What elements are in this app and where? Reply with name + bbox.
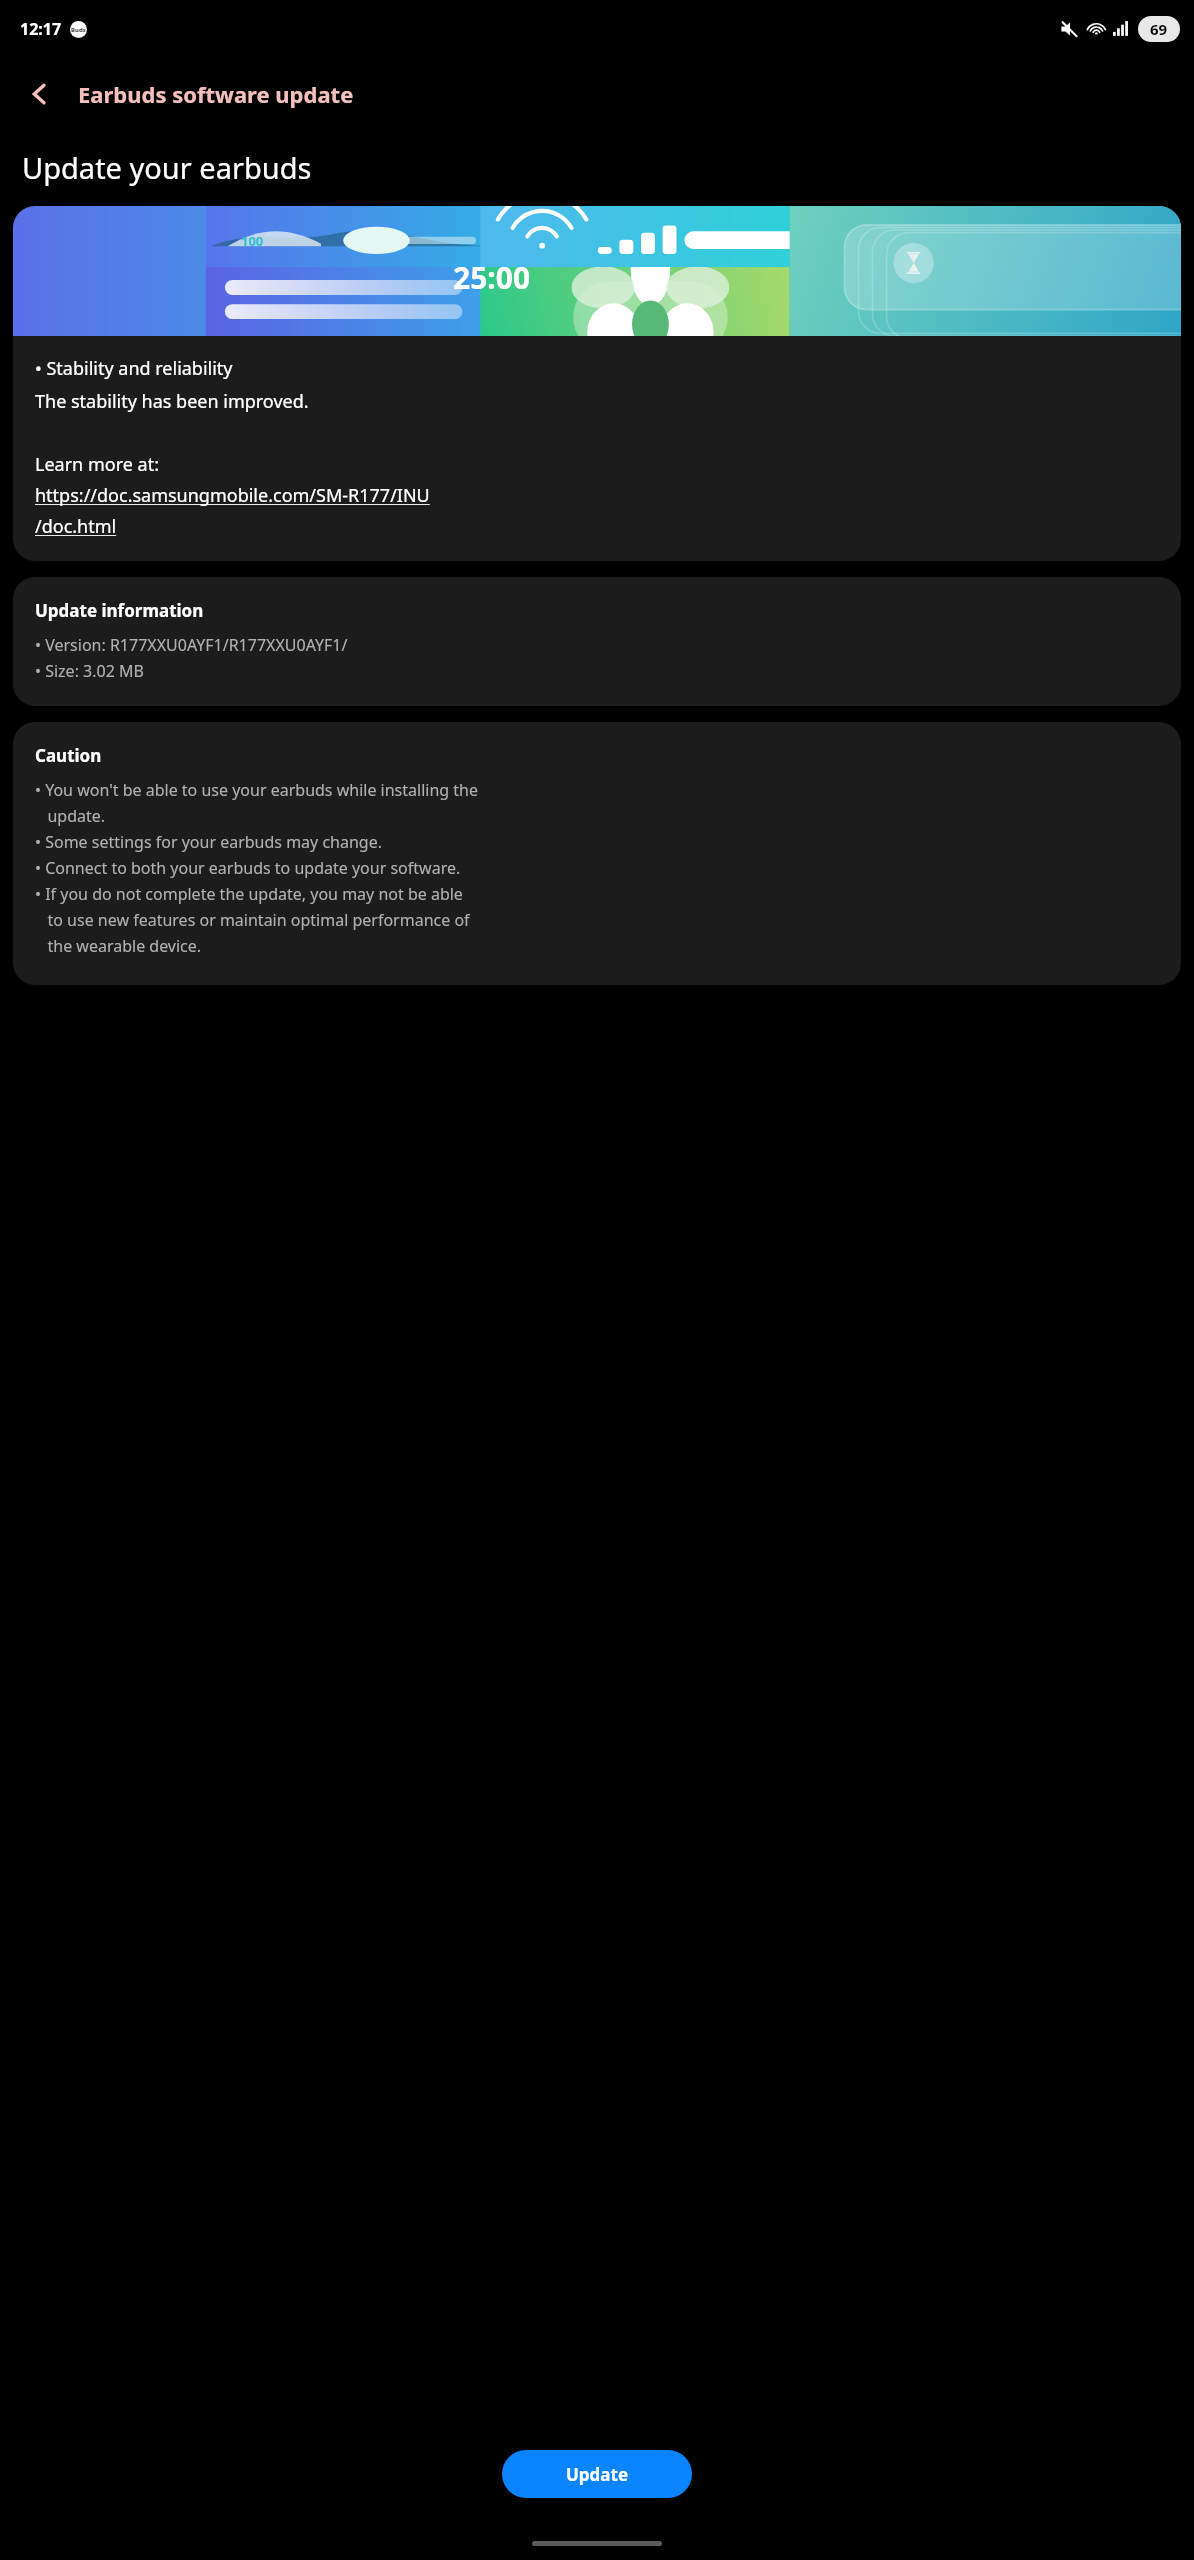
- staticText: 25:00: [453, 257, 531, 298]
- staticText: https://doc.samsungmobile.com/SM-R177/IN…: [35, 483, 430, 508]
- staticText: /doc.html: [35, 514, 117, 539]
- staticText: Update your earbuds: [22, 148, 312, 187]
- staticText: 69: [1150, 19, 1168, 39]
- button[interactable]: Update: [502, 2450, 692, 2498]
- staticText: Update: [566, 2463, 629, 2486]
- staticText: • Some settings for your earbuds may cha…: [35, 831, 382, 853]
- staticText: • You won't be able to use your earbuds …: [35, 779, 478, 827]
- staticText: Learn more at:: [35, 452, 159, 477]
- staticText: 12:17: [20, 18, 62, 40]
- staticText: • Stability and reliability: [35, 356, 233, 381]
- staticText: 100: [241, 232, 264, 250]
- staticText: • Size: 3.02 MB: [35, 660, 144, 682]
- staticText: • If you do not complete the update, you…: [35, 883, 470, 957]
- button[interactable]: Back: [14, 68, 66, 120]
- staticText: Update information: [35, 599, 204, 622]
- staticText: Buds: [71, 26, 86, 34]
- staticText: • Version: R177XXU0AYF1/R177XXU0AYF1/: [35, 634, 348, 656]
- staticText: Earbuds software update: [78, 79, 354, 109]
- staticText: Caution: [35, 744, 102, 767]
- staticText: • Connect to both your earbuds to update…: [35, 857, 461, 879]
- staticText: The stability has been improved.: [35, 389, 309, 414]
- button[interactable]: https://doc.samsungmobile.com/SM-R177/IN…: [35, 483, 430, 539]
